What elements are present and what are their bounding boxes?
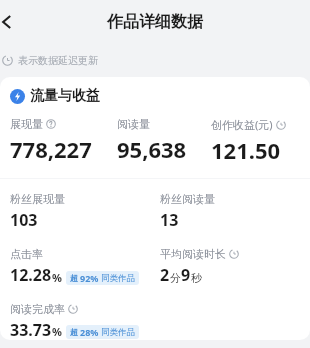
staticText: 超 — [70, 327, 78, 337]
staticText: % — [52, 270, 62, 285]
staticText: 超 — [70, 273, 78, 283]
staticText: 秒 — [191, 271, 202, 285]
staticText: 阅读量 — [117, 117, 150, 131]
staticText: 103 — [10, 209, 38, 231]
staticText: 778,227 — [10, 134, 92, 164]
staticText: 33.73 — [10, 319, 52, 340]
staticText: 12.28 — [10, 264, 52, 286]
staticText: 创作收益(元) — [211, 117, 273, 132]
staticText: 阅读完成率 — [10, 302, 65, 316]
staticText: 13 — [160, 209, 179, 231]
button[interactable]: 超 — [66, 271, 139, 285]
staticText: 表示数据延迟更新 — [18, 54, 98, 67]
staticText: 粉丝阅读量 — [160, 192, 215, 206]
staticText: 点击率 — [10, 247, 43, 261]
button[interactable]: 返回 — [0, 5, 24, 39]
staticText: 流量与收益 — [30, 87, 100, 105]
staticText: 分 — [170, 271, 181, 285]
button[interactable]: 超 — [66, 325, 139, 339]
staticText: 92% — [80, 272, 99, 284]
staticText: 9 — [181, 264, 191, 286]
staticText: 121.50 — [211, 135, 281, 165]
staticText: 同类作品 — [101, 327, 135, 338]
staticText: 同类作品 — [101, 273, 135, 284]
staticText: 平均阅读时长 — [160, 247, 226, 261]
staticText: 95,638 — [117, 134, 187, 164]
staticText: 2 — [160, 264, 170, 286]
staticText: 作品详细数据 — [107, 12, 203, 32]
staticText: 28% — [80, 326, 99, 338]
staticText: 粉丝展现量 — [10, 192, 65, 206]
staticText: % — [52, 324, 62, 339]
staticText: 展现量 — [10, 117, 43, 131]
